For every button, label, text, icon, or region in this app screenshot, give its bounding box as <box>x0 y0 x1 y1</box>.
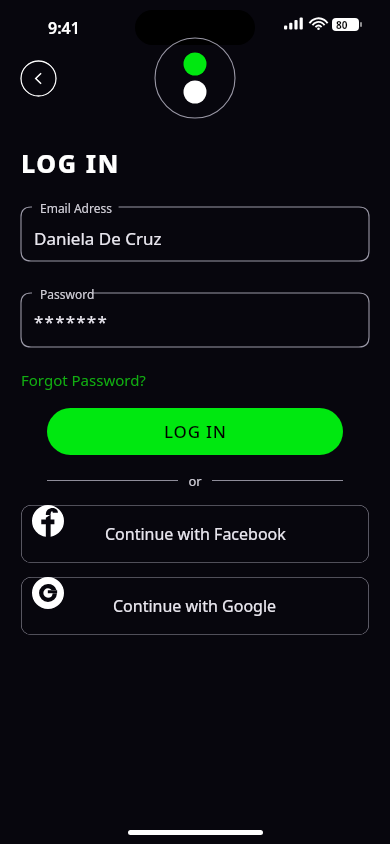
staticText: Email Adress <box>40 200 112 216</box>
staticText: Daniela De Cruz <box>34 227 162 250</box>
staticText: Continue with Facebook <box>105 523 286 545</box>
button[interactable]: LOG IN <box>47 408 343 455</box>
staticText: Password <box>40 286 95 302</box>
staticText: 9:41 <box>48 17 80 39</box>
button[interactable]: Email Adress <box>21 198 369 270</box>
staticText: LOG IN <box>164 420 227 443</box>
staticText: or <box>188 472 202 488</box>
button[interactable]: Forgot Password? <box>21 368 146 392</box>
staticText: Forgot Password? <box>21 370 146 390</box>
staticText: Continue with Google <box>113 595 277 617</box>
staticText: ******* <box>34 310 108 333</box>
button[interactable]: Continue with Google <box>21 577 369 635</box>
button[interactable]: Back <box>20 60 57 97</box>
button[interactable]: Continue with Facebook <box>21 505 369 563</box>
staticText: LOG IN <box>21 146 120 180</box>
staticText: 80 <box>336 18 348 32</box>
button[interactable]: Password <box>21 284 369 356</box>
